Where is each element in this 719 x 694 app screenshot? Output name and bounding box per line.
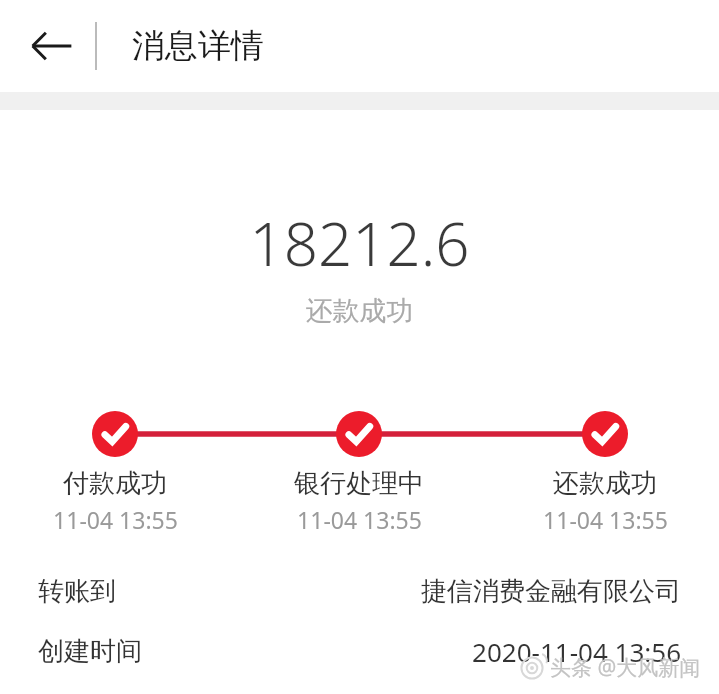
staticText: 转账到 [38, 575, 116, 608]
staticText: 头条 @大风新闻 [550, 653, 701, 682]
staticText: 还款成功 [553, 467, 657, 500]
staticText: 消息详情 [132, 25, 264, 67]
staticText: 还款成功 [0, 294, 719, 328]
button[interactable]: 创建时间 [0, 629, 719, 673]
staticText: 11-04 13:55 [53, 504, 178, 535]
staticText: 11-04 13:55 [297, 504, 422, 535]
button[interactable]: 银行处理中 [249, 467, 469, 535]
staticText: 捷信消费金融有限公司 [421, 575, 681, 608]
button[interactable]: Back [14, 8, 90, 84]
button[interactable]: 付款成功 [5, 467, 225, 535]
staticText: 付款成功 [63, 467, 167, 500]
staticText: 银行处理中 [294, 467, 424, 500]
button[interactable]: 还款成功 [495, 467, 715, 535]
staticText: 创建时间 [38, 635, 142, 668]
button[interactable]: 转账到 [0, 569, 719, 613]
staticText: 18212.6 [0, 202, 719, 284]
staticText: 11-04 13:55 [543, 504, 668, 535]
staticText: 2020-11-04 13:56 [472, 634, 681, 669]
